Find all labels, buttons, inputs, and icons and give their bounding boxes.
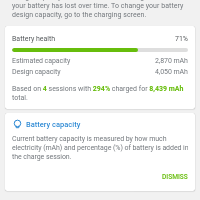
staticText: DISMISS [162, 173, 188, 181]
staticText: Current battery capacity is measured by … [12, 135, 188, 161]
button[interactable]: DISMISS [162, 172, 188, 182]
staticText: Based on 4 sessions with 294% charged fo… [12, 85, 184, 102]
staticText: 2,870 mAh [155, 57, 188, 65]
staticText: Design capacity [12, 68, 61, 76]
staticText: 71% [175, 35, 188, 43]
staticText: Battery health [12, 35, 56, 43]
other: Battery capacity tip [12, 119, 23, 130]
staticText: design capacity, which is how much charg… [12, 0, 184, 19]
staticText: Battery capacity [26, 120, 81, 129]
staticText: 4,050 mAh [155, 68, 188, 76]
staticText: Estimated capacity [12, 57, 71, 65]
